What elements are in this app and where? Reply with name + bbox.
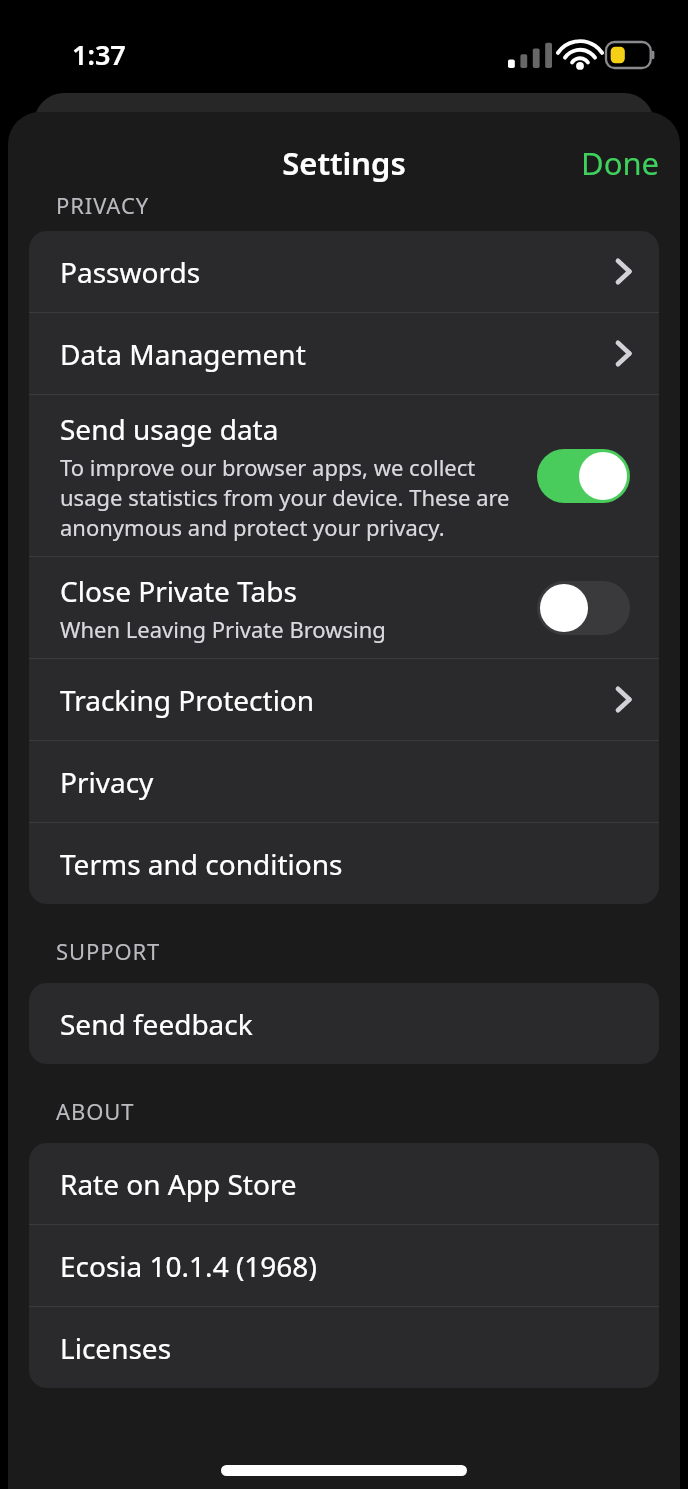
staticText: Send feedback bbox=[60, 1005, 253, 1043]
button[interactable]: Passwords bbox=[29, 231, 659, 312]
button[interactable]: Send usage data bbox=[29, 395, 659, 556]
staticText: Send usage data bbox=[60, 410, 279, 448]
staticText: Settings bbox=[282, 142, 406, 184]
button[interactable]: Data Management bbox=[29, 313, 659, 394]
staticText: Tracking Protection bbox=[60, 681, 315, 719]
button[interactable]: Tracking Protection bbox=[29, 659, 659, 740]
button[interactable]: Licenses bbox=[29, 1307, 659, 1388]
button[interactable]: Done bbox=[561, 130, 680, 196]
staticText: PRIVACY bbox=[56, 190, 150, 219]
button[interactable]: Terms and conditions bbox=[29, 823, 659, 904]
button[interactable]: Ecosia 10.1.4 (1968) bbox=[29, 1225, 659, 1306]
staticText: ABOUT bbox=[56, 1096, 135, 1126]
button[interactable]: Switch on bbox=[537, 449, 630, 503]
staticText: 1:37 bbox=[72, 36, 126, 73]
staticText: Done bbox=[581, 142, 660, 184]
button[interactable]: Close Private Tabs bbox=[29, 557, 659, 658]
staticText: Data Management bbox=[60, 335, 306, 373]
button[interactable]: Privacy bbox=[29, 741, 659, 822]
staticText: Privacy bbox=[60, 763, 154, 801]
staticText: Passwords bbox=[60, 253, 201, 291]
staticText: Rate on App Store bbox=[60, 1165, 297, 1203]
button[interactable]: Switch off bbox=[537, 581, 630, 635]
staticText: SUPPORT bbox=[56, 936, 161, 966]
staticText: Ecosia 10.1.4 (1968) bbox=[60, 1247, 317, 1285]
staticText: When Leaving Private Browsing bbox=[60, 614, 386, 644]
button[interactable]: Rate on App Store bbox=[29, 1143, 659, 1224]
staticText: Close Private Tabs bbox=[60, 572, 297, 610]
button[interactable]: Send feedback bbox=[29, 983, 659, 1064]
staticText: To improve our browser apps, we collect … bbox=[60, 452, 525, 542]
staticText: Terms and conditions bbox=[60, 845, 343, 883]
staticText: Licenses bbox=[60, 1329, 172, 1367]
